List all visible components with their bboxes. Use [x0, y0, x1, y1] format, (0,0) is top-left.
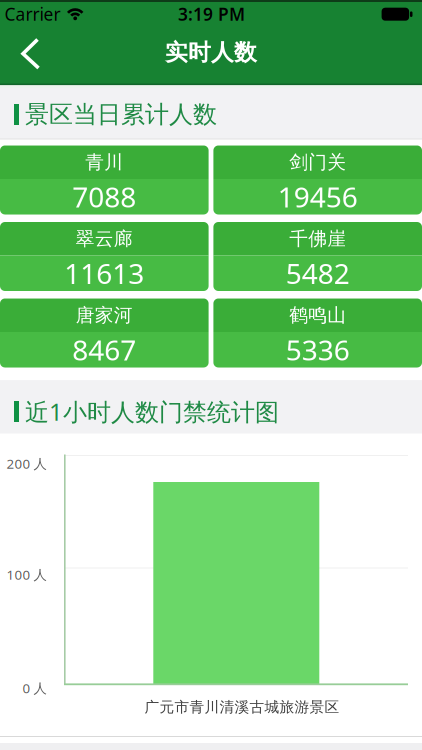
button[interactable]: 鹤鸣山	[213, 298, 422, 367]
staticText: 近1小时人数门禁统计图	[25, 396, 279, 427]
staticText: 景区当日累计人数	[25, 100, 217, 129]
button[interactable]: 青川	[0, 145, 209, 214]
staticText: 翠云廊	[76, 227, 133, 250]
staticText: 唐家河	[76, 304, 133, 327]
staticText: 剑门关	[289, 151, 346, 174]
staticText: 5482	[286, 255, 350, 292]
staticText: 8467	[72, 331, 136, 368]
staticText: 200 人	[6, 455, 46, 472]
staticText: 100 人	[6, 566, 46, 583]
button[interactable]: 剑门关	[213, 145, 422, 214]
button[interactable]: 翠云廊	[0, 222, 209, 291]
button[interactable]: 千佛崖	[213, 222, 422, 291]
staticText: 7088	[72, 178, 136, 215]
staticText: 鹤鸣山	[289, 304, 346, 327]
button[interactable]: 唐家河	[0, 298, 209, 367]
staticText: 青川	[85, 151, 123, 174]
button[interactable]: Back	[9, 31, 55, 75]
staticText: 千佛崖	[289, 227, 346, 250]
staticText: Carrier	[4, 2, 60, 25]
staticText: 广元市青川清溪古城旅游景区	[144, 698, 339, 716]
staticText: 19456	[278, 178, 358, 215]
staticText: 0 人	[22, 679, 46, 697]
staticText: 3:19 PM	[178, 2, 245, 25]
staticText: 实时人数	[165, 39, 257, 66]
staticText: 11613	[64, 255, 144, 292]
staticText: 5336	[286, 331, 350, 368]
